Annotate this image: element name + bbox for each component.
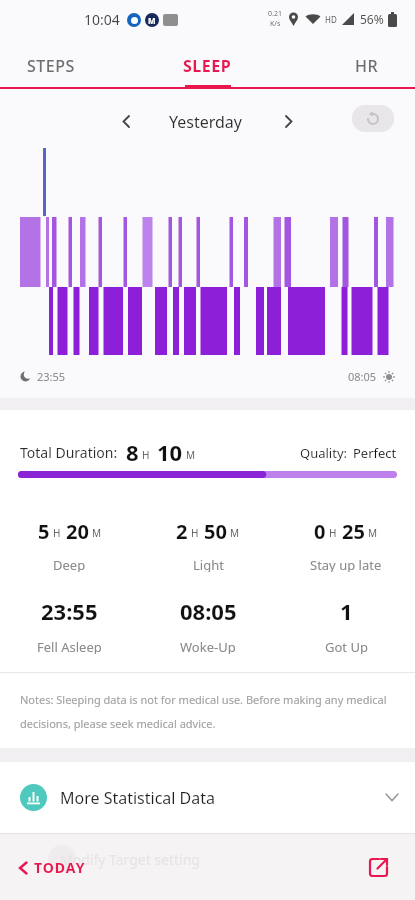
staticText: 2 [176, 518, 188, 542]
staticText: M [368, 526, 378, 540]
staticText: 56% [360, 11, 384, 27]
staticText: M [92, 526, 102, 540]
staticText: 10 [157, 437, 183, 465]
staticText: H [53, 526, 61, 540]
staticText: Light [193, 556, 224, 572]
staticText: 23:55 [41, 596, 98, 620]
button[interactable] [362, 851, 395, 884]
button[interactable] [277, 107, 301, 136]
button[interactable]: TODAY [12, 852, 92, 883]
staticText: M [230, 526, 240, 540]
staticText: Total Duration: [20, 443, 118, 462]
staticText: STEPS [27, 55, 75, 77]
staticText: Yesterday [169, 111, 243, 133]
staticText: 0 [314, 518, 326, 542]
staticText: H [142, 448, 150, 462]
staticText: 23:55 [37, 369, 66, 384]
staticText: Got Up [325, 638, 368, 654]
button[interactable]: HR [345, 45, 389, 87]
staticText: Deep [53, 556, 86, 572]
button[interactable]: STEPS [14, 45, 88, 87]
staticText: 10:04 [84, 10, 120, 29]
staticText: Woke-Up [180, 638, 236, 654]
staticText: 20 [66, 518, 89, 542]
staticText: TODAY [34, 858, 86, 877]
staticText: SLEEP [183, 55, 232, 77]
staticText: K/s [270, 19, 281, 29]
button[interactable] [114, 107, 138, 136]
staticText: Fell Asleep [37, 638, 102, 654]
staticText: H [329, 526, 337, 540]
staticText: Notes: Sleeping data is not for medical … [20, 692, 387, 707]
staticText: 08:05 [180, 596, 237, 620]
staticText: H [191, 526, 199, 540]
staticText: Modify Target setting [60, 850, 200, 869]
staticText: M [148, 15, 156, 26]
button[interactable] [352, 105, 394, 132]
staticText: 50 [204, 518, 227, 542]
staticText: 0.21 [268, 9, 282, 19]
staticText: Perfect [353, 444, 397, 462]
staticText: More Statistical Data [60, 787, 216, 809]
staticText: 08:05 [348, 369, 377, 384]
button[interactable]: SLEEP [170, 45, 245, 87]
staticText: 1 [340, 596, 353, 620]
staticText: HD [325, 14, 337, 25]
staticText: Stay up late [310, 556, 382, 572]
button[interactable]: More Statistical Data [0, 762, 415, 833]
staticText: decisions, please seek medical advice. [20, 716, 216, 731]
staticText: 5 [38, 518, 50, 542]
staticText: 25 [342, 518, 365, 542]
staticText: M [186, 448, 196, 462]
staticText: HR [355, 55, 379, 77]
staticText: 8 [126, 437, 139, 465]
staticText: Quality: [300, 444, 347, 462]
